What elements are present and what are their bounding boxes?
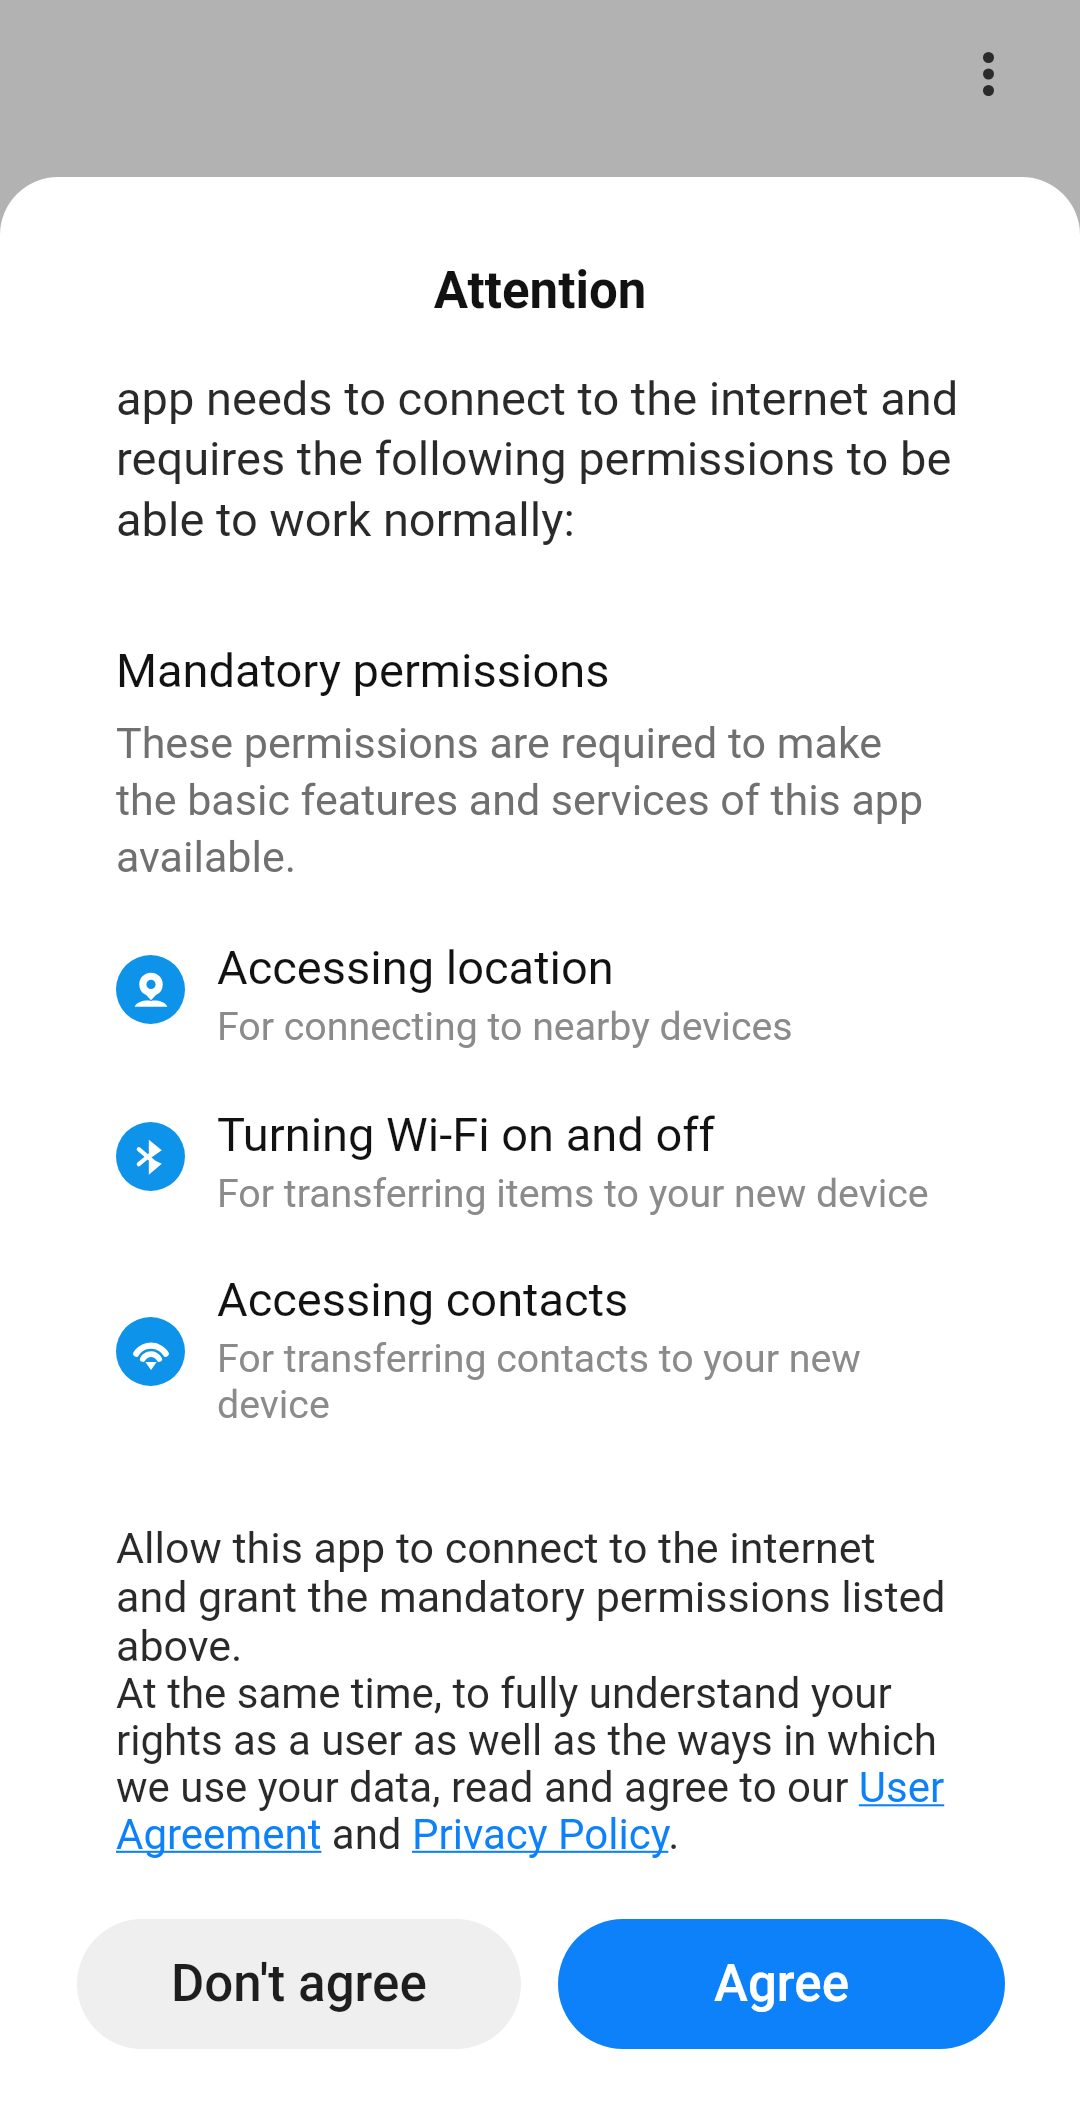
staticText: For transferring items to your new devic…: [217, 1171, 947, 1217]
staticText: For transferring contacts to your new de…: [217, 1336, 947, 1428]
button[interactable]: Agree: [558, 1919, 1005, 2049]
staticText: app needs to connect to the internet and…: [116, 371, 976, 548]
staticText: For connecting to nearby devices: [217, 1004, 947, 1050]
staticText: These permissions are required to make t…: [116, 718, 936, 883]
button[interactable]: Don't agree: [77, 1919, 521, 2049]
staticText: Turning Wi-Fi on and off: [217, 1107, 947, 1162]
staticText: Accessing location: [217, 940, 947, 995]
staticText: Don't agree: [171, 1954, 427, 2014]
button[interactable]: More options: [943, 29, 1033, 119]
staticText: Attention: [0, 261, 1080, 321]
staticText: Agree: [714, 1954, 850, 2014]
staticText: At the same time, to fully understand yo…: [116, 1669, 964, 1859]
staticText: Mandatory permissions: [116, 643, 816, 698]
staticText: Accessing contacts: [217, 1272, 947, 1327]
staticText: Allow this app to connect to the interne…: [116, 1523, 954, 1671]
